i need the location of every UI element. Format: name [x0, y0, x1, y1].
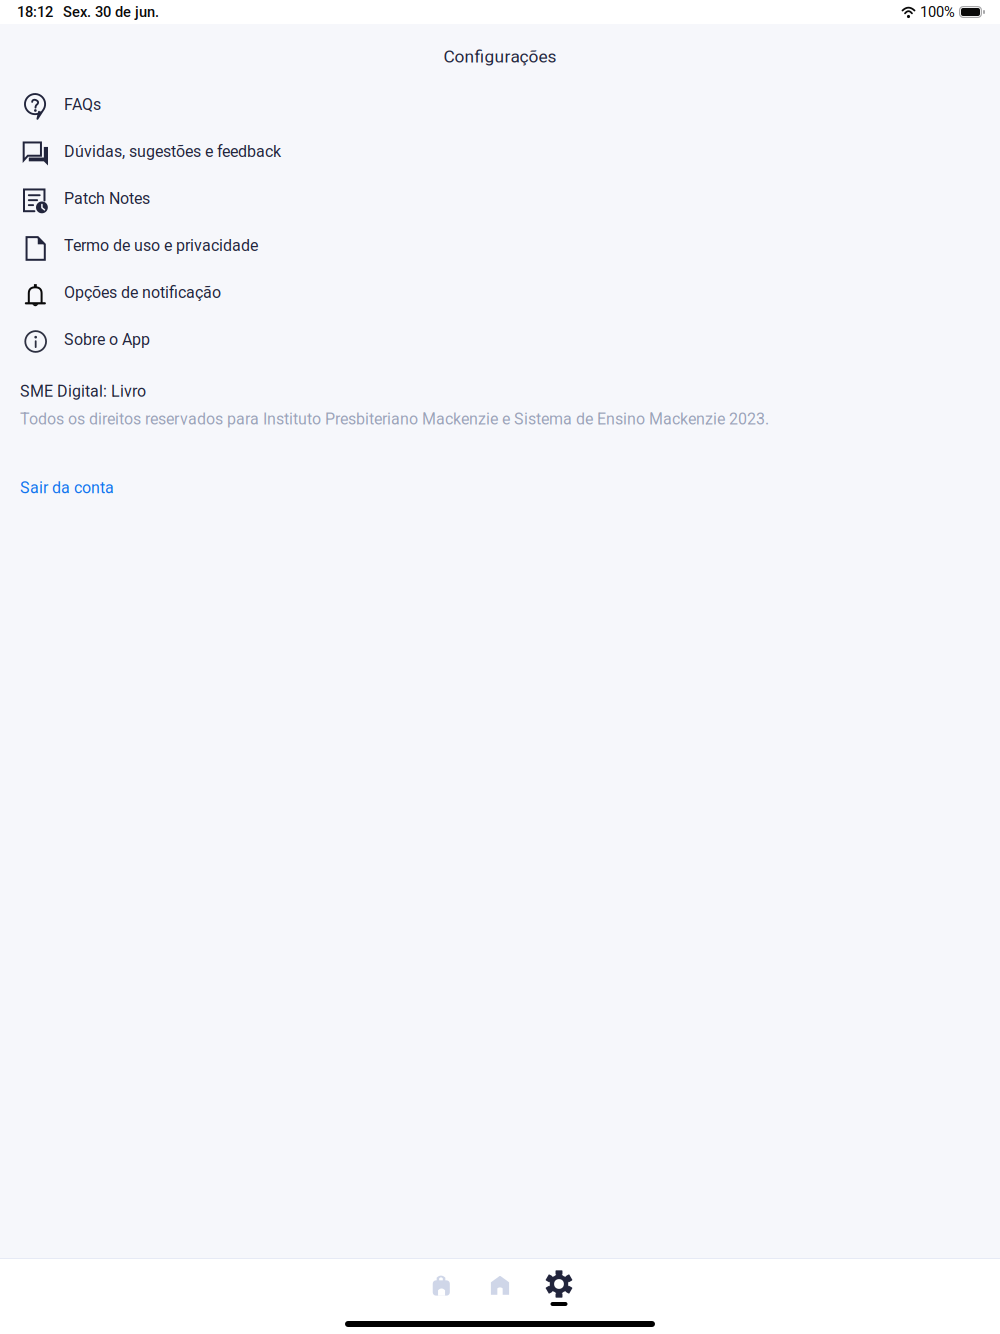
- staticText: SME Digital: Livro: [20, 382, 146, 401]
- staticText: Todos os direitos reservados para Instit…: [20, 410, 769, 429]
- staticText: Patch Notes: [64, 189, 150, 208]
- staticText: Sobre o App: [64, 330, 150, 349]
- staticText: Dúvidas, sugestões e feedback: [64, 142, 281, 161]
- staticText: FAQs: [64, 95, 101, 114]
- button[interactable]: FAQs: [0, 81, 1000, 128]
- button[interactable]: Patch Notes: [0, 175, 1000, 222]
- staticText: Sair da conta: [20, 478, 114, 497]
- button[interactable]: Mochila: [411, 1270, 470, 1314]
- staticText: Termo de uso e privacidade: [64, 236, 258, 255]
- staticText: Configurações: [443, 46, 556, 67]
- button[interactable]: Termo de uso e privacidade: [0, 222, 1000, 269]
- button[interactable]: Início: [470, 1270, 529, 1314]
- staticText: 18:12: [17, 3, 53, 21]
- button[interactable]: Sair da conta: [20, 478, 114, 497]
- button[interactable]: Configurações: [529, 1270, 588, 1314]
- staticText: 100%: [920, 3, 955, 21]
- staticText: Sex. 30 de jun.: [63, 3, 159, 21]
- button[interactable]: Opções de notificação: [0, 269, 1000, 316]
- button[interactable]: Sobre o App: [0, 316, 1000, 363]
- button[interactable]: Dúvidas, sugestões e feedback: [0, 128, 1000, 175]
- staticText: Opções de notificação: [64, 283, 221, 302]
